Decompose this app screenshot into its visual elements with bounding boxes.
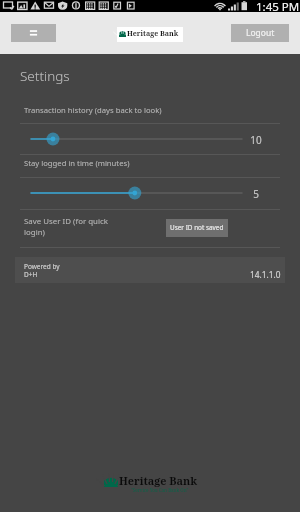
- staticText: "Service You Can Bank On": [131, 487, 189, 493]
- button[interactable]: Menu: [11, 24, 56, 42]
- staticText: Heritage Bank: [127, 28, 179, 38]
- staticText: Settings: [20, 67, 70, 85]
- button[interactable]: Logout: [231, 24, 289, 42]
- staticText: 5: [253, 187, 259, 201]
- staticText: Stay logged in time (minutes): [24, 158, 130, 168]
- staticText: Powered by D+H: [24, 262, 60, 279]
- staticText: Heritage Bank: [119, 473, 198, 488]
- button[interactable]: Slider: [20, 184, 254, 202]
- staticText: Transaction history (days back to look): [24, 105, 162, 115]
- button[interactable]: Slider: [20, 130, 254, 148]
- staticText: Logout: [246, 27, 275, 39]
- staticText: 10: [250, 133, 262, 147]
- staticText: 1:45 PM: [256, 0, 300, 11]
- button[interactable]: User ID not saved: [166, 219, 228, 237]
- staticText: 14.1.1.0: [250, 269, 281, 280]
- staticText: Save User ID (for quick login): [24, 216, 108, 237]
- staticText: User ID not saved: [170, 223, 224, 232]
